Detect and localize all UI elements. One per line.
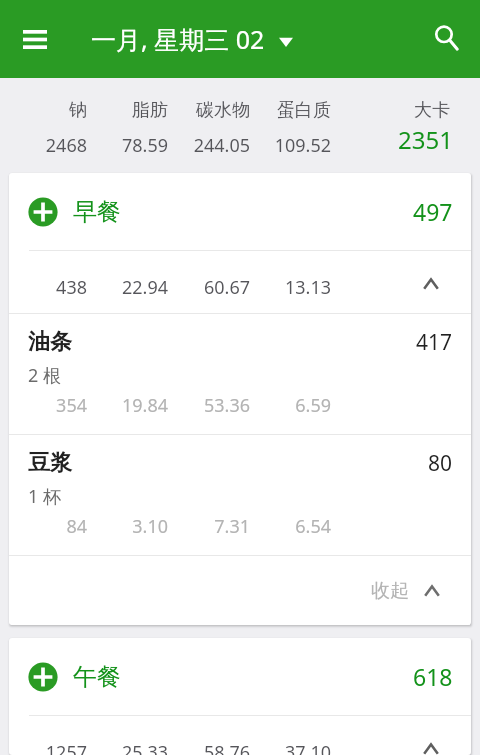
staticText: 80: [428, 449, 453, 478]
staticText: 84: [9, 514, 87, 539]
staticText: 13.13: [9, 275, 331, 300]
button[interactable]: 早餐: [9, 173, 471, 250]
staticText: 6.54: [9, 514, 331, 539]
staticText: 53.36: [9, 393, 250, 418]
button[interactable]: 1257: [9, 716, 471, 755]
staticText: 碳水物: [0, 99, 250, 122]
staticText: 收起: [371, 579, 409, 603]
staticText: 497: [413, 196, 453, 227]
staticText: 2351: [398, 123, 453, 156]
button[interactable]: Search: [424, 15, 472, 63]
button[interactable]: 豆浆: [9, 435, 471, 555]
staticText: 354: [9, 393, 87, 418]
staticText: 钠: [0, 99, 87, 122]
button[interactable]: 438: [9, 251, 471, 313]
staticText: 1257: [9, 740, 87, 755]
staticText: 22.94: [9, 275, 168, 300]
staticText: 蛋白质: [0, 99, 331, 122]
staticText: 3.10: [9, 514, 168, 539]
button[interactable]: 收起: [9, 556, 471, 625]
staticText: 25.33: [9, 740, 168, 755]
staticText: 1 杯: [28, 484, 61, 509]
staticText: 油条: [28, 328, 72, 356]
staticText: 一月, 星期三 02: [91, 22, 265, 56]
staticText: 37.10: [9, 740, 331, 755]
staticText: 午餐: [73, 662, 121, 692]
staticText: 618: [413, 661, 453, 692]
staticText: 2 根: [28, 363, 61, 388]
staticText: 58.76: [9, 740, 250, 755]
staticText: 2468: [0, 133, 87, 158]
staticText: 109.52: [0, 133, 331, 158]
button[interactable]: 一月, 星期三 02: [91, 22, 293, 56]
button[interactable]: 油条: [9, 314, 471, 434]
staticText: 19.84: [9, 393, 168, 418]
staticText: 7.31: [9, 514, 250, 539]
staticText: 60.67: [9, 275, 250, 300]
button[interactable]: 午餐: [9, 638, 471, 715]
staticText: 脂肪: [0, 99, 168, 122]
staticText: 244.05: [0, 133, 250, 158]
staticText: 早餐: [73, 197, 121, 227]
button[interactable]: Open navigation menu: [11, 15, 59, 63]
staticText: 417: [416, 328, 453, 357]
staticText: 6.59: [9, 393, 331, 418]
staticText: 78.59: [0, 133, 168, 158]
staticText: 大卡: [414, 99, 450, 122]
staticText: 438: [9, 275, 87, 300]
staticText: 豆浆: [28, 449, 72, 477]
